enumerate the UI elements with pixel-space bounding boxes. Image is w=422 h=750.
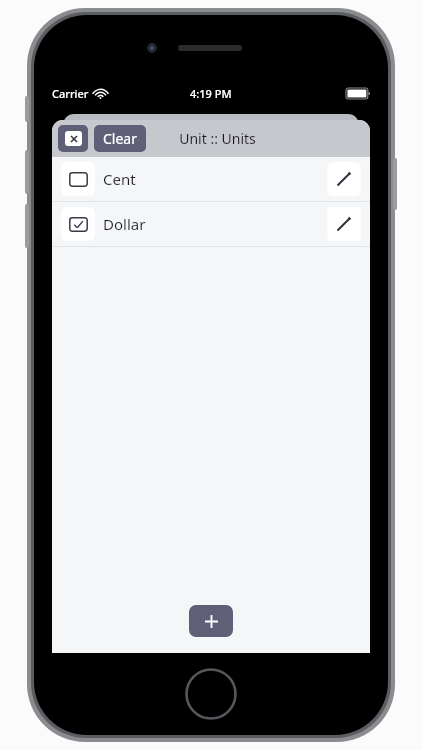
button[interactable]: Close: [58, 125, 88, 152]
staticText: Unit :: Units: [179, 129, 256, 148]
button[interactable]: Add unit: [189, 605, 233, 637]
staticText: Carrier: [52, 86, 89, 101]
staticText: Dollar: [103, 214, 146, 234]
button[interactable]: Checked: [61, 207, 95, 241]
button[interactable]: Edit Dollar: [327, 207, 361, 241]
staticText: 4:19 PM: [190, 86, 232, 101]
button[interactable]: Edit Cent: [327, 162, 361, 196]
staticText: Cent: [103, 169, 136, 189]
staticText: Clear: [103, 129, 137, 148]
button[interactable]: Checked: [52, 202, 370, 246]
button[interactable]: Clear: [94, 125, 146, 152]
button[interactable]: Unchecked: [52, 157, 370, 201]
button[interactable]: Unchecked: [61, 162, 95, 196]
